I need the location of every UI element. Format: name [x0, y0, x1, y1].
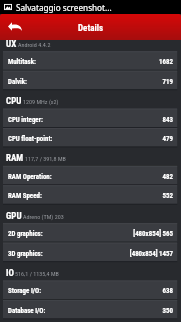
staticText: 1209 MHz (x2) [23, 98, 59, 105]
staticText: Storage I/O: [8, 287, 42, 295]
staticText: 719 [162, 78, 173, 86]
staticText: 482 [162, 173, 173, 181]
button[interactable]: CPU integer: [3, 109, 177, 128]
button[interactable]: Database I/O: [3, 300, 177, 319]
staticText: 117,7 / 391,8 MB [25, 155, 66, 162]
staticText: 1682 [159, 58, 173, 66]
staticText: Database I/O: [8, 307, 46, 315]
button[interactable]: RAM Speed: [3, 185, 177, 204]
staticText: Dalvik: [8, 78, 27, 86]
button[interactable]: 3D graphics: [3, 243, 177, 262]
staticText: CPU integer: [8, 116, 43, 124]
staticText: Salvataggio screenshot... [16, 2, 112, 13]
staticText: RAM [6, 153, 24, 164]
staticText: CPU [6, 96, 22, 107]
staticText: UX [6, 39, 17, 50]
staticText: 3D graphics: [8, 250, 43, 258]
button[interactable]: Back [0, 14, 181, 40]
staticText: 479 [162, 135, 173, 143]
staticText: 516,1 / 1135,4 MB [15, 270, 59, 277]
staticText: RAM Operation: [8, 173, 52, 181]
staticText: IO [6, 268, 14, 279]
button[interactable]: RAM Operation: [3, 166, 177, 185]
staticText: 2D graphics: [8, 230, 43, 238]
staticText: CPU float-point: [8, 135, 53, 143]
staticText: GPU [6, 211, 22, 222]
staticText: Adreno (TM) 203 [23, 213, 64, 220]
staticText: RAM Speed: [8, 192, 42, 200]
staticText: 552 [162, 192, 173, 200]
staticText: Android 4.4.2 [18, 41, 51, 48]
staticText: 638 [162, 287, 173, 295]
button[interactable]: CPU float-point: [3, 128, 177, 147]
staticText: 350 [162, 307, 173, 315]
staticText: [480x854] 565 [133, 230, 173, 238]
button[interactable]: Storage I/O: [3, 280, 177, 299]
button[interactable]: Multitask: [3, 51, 177, 70]
staticText: [480x854] 1457 [129, 250, 173, 258]
staticText: 843 [162, 116, 173, 124]
staticText: Details [78, 23, 104, 34]
staticText: Multitask: [8, 58, 36, 66]
button[interactable]: 2D graphics: [3, 223, 177, 242]
button[interactable]: Dalvik: [3, 71, 177, 90]
